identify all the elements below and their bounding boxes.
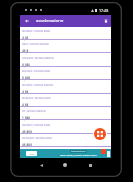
button[interactable]: APRI bbox=[20, 149, 111, 158]
button[interactable]: decimetro / secondo quadrato bbox=[20, 80, 111, 93]
button[interactable]: Recents bbox=[84, 159, 96, 171]
staticText: 4,58 bbox=[22, 91, 29, 95]
button[interactable]: ettometro / secondo piazza bbox=[20, 66, 111, 79]
staticText: decametro / secondo piazza bbox=[22, 97, 51, 100]
staticText: 0,458 bbox=[22, 77, 31, 81]
staticText: micrometro / secondo piazza bbox=[22, 137, 52, 140]
button[interactable]: Back bbox=[35, 159, 47, 171]
staticText: metro / secondo quadrato bbox=[22, 42, 49, 45]
staticText: 4,58 bbox=[22, 104, 29, 108]
button[interactable]: Home bbox=[59, 159, 71, 171]
button[interactable]: APRI bbox=[26, 151, 37, 156]
button[interactable]: Back bbox=[21, 15, 32, 27]
staticText: 45,800 bbox=[22, 144, 32, 148]
staticText: accelerazione bbox=[36, 17, 64, 23]
staticText: 4,58 bbox=[22, 103, 29, 107]
staticText: decimetro / secondo piazza bbox=[22, 29, 51, 32]
staticText: 45,8 bbox=[22, 49, 29, 53]
staticText: 1,580 bbox=[22, 117, 31, 121]
button[interactable]: millimetro / secondo piazza bbox=[20, 120, 111, 133]
staticText: 4,58 bbox=[22, 90, 29, 94]
staticText: Sponsorizzato bbox=[71, 150, 86, 153]
button[interactable]: micrometro / secondo piazza bbox=[20, 133, 111, 146]
staticText: metro / secondo quadrato bbox=[22, 43, 49, 46]
staticText: APRI bbox=[29, 152, 35, 155]
staticText: 17:48 bbox=[99, 8, 109, 13]
staticText: 4,04 bbox=[22, 37, 29, 41]
staticText: micrometro / secondo piazza bbox=[22, 136, 52, 139]
staticText: cm / secondo quadrato bbox=[22, 109, 46, 112]
staticText: 0,458 bbox=[22, 76, 31, 80]
button[interactable]: Keypad bbox=[94, 128, 106, 140]
button[interactable]: decametro / secondo piazza bbox=[20, 93, 111, 106]
staticText: chilometro / secondo quadrato bbox=[22, 57, 54, 60]
staticText: 4,04 bbox=[22, 36, 29, 40]
staticText: ettometro / secondo piazza bbox=[22, 70, 51, 73]
staticText: Gioca gratis, scarica subito l'app! bbox=[60, 153, 97, 156]
staticText: chilometro / secondo quadrato bbox=[22, 56, 54, 59]
staticText: millimetro / secondo piazza bbox=[22, 123, 51, 126]
button[interactable]: cm / secondo quadrato bbox=[20, 106, 111, 119]
button[interactable]: decimetro / secondo piazza bbox=[20, 26, 111, 39]
staticText: ettometro / secondo piazza bbox=[22, 69, 51, 72]
staticText: decimetro / secondo quadrato bbox=[22, 84, 54, 87]
staticText: decimetro / secondo quadrato bbox=[22, 83, 54, 86]
staticText: cm / secondo quadrato bbox=[22, 110, 46, 113]
button[interactable]: metro / secondo quadrato bbox=[20, 39, 111, 52]
staticText: 45,8 bbox=[22, 50, 29, 54]
staticText: 0,045 bbox=[22, 64, 31, 68]
staticText: 45,800 bbox=[22, 131, 32, 135]
button[interactable]: Delete bbox=[100, 15, 111, 27]
button[interactable]: chilometro / secondo quadrato bbox=[20, 53, 111, 66]
staticText: decametro / secondo piazza bbox=[22, 96, 51, 99]
staticText: millimetro / secondo piazza bbox=[22, 124, 51, 127]
staticText: 1,580 bbox=[22, 116, 31, 120]
staticText: 0,045 bbox=[22, 63, 31, 67]
staticText: 45,800 bbox=[22, 130, 32, 134]
staticText: decimetro / secondo piazza bbox=[22, 30, 51, 33]
staticText: 45,800 bbox=[22, 143, 32, 147]
